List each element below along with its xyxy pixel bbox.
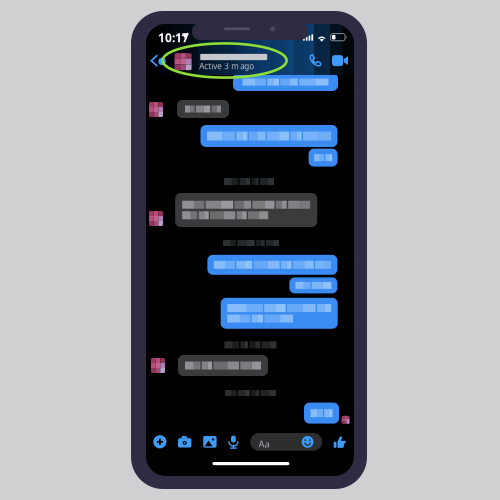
button[interactable]: Active 3 m ago (175, 53, 287, 71)
button[interactable]: Photos (200, 433, 220, 451)
staticText: 10:17 (158, 30, 189, 45)
button[interactable]: Video call (330, 51, 350, 71)
button[interactable]: Back (150, 49, 172, 73)
button[interactable]: Audio call (305, 51, 325, 71)
button[interactable]: More options (150, 433, 170, 451)
staticText: Aa (259, 438, 270, 450)
button[interactable]: Voice message (223, 433, 243, 451)
staticText: Active 3 m ago (199, 61, 254, 71)
button[interactable]: Camera (175, 433, 195, 451)
button[interactable]: Send like (332, 433, 348, 451)
button[interactable]: Aa (250, 433, 322, 451)
